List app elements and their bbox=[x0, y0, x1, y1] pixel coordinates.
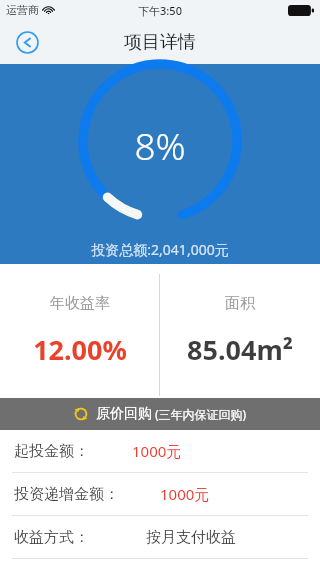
button[interactable]: 面积 bbox=[160, 264, 320, 398]
staticText: 面积 bbox=[225, 294, 255, 313]
staticText: 项目详情 bbox=[124, 31, 196, 54]
staticText: 投资总额:2,041,000元 bbox=[91, 240, 229, 259]
staticText: 1000元 bbox=[160, 484, 210, 504]
staticText: 运营商 bbox=[6, 3, 39, 17]
button[interactable]: 投资递增金额： bbox=[0, 473, 320, 515]
staticText: 85.04m² bbox=[187, 331, 293, 368]
button[interactable]: Back bbox=[10, 25, 44, 59]
staticText: 收益方式： bbox=[14, 528, 89, 547]
staticText: 下午3:50 bbox=[138, 3, 182, 18]
staticText: 12.00% bbox=[33, 331, 127, 368]
staticText: 原价回购 bbox=[96, 405, 152, 423]
staticText: 8% bbox=[134, 120, 186, 170]
button[interactable]: 原价回购 bbox=[0, 398, 320, 430]
staticText: 1000元 bbox=[132, 441, 182, 461]
button[interactable]: 收益方式： bbox=[0, 516, 320, 558]
button[interactable]: 年收益率 bbox=[0, 264, 159, 398]
staticText: 按月支付收益 bbox=[146, 528, 236, 547]
staticText: 投资递增金额： bbox=[14, 485, 119, 504]
staticText: 年收益率 bbox=[50, 294, 110, 313]
button[interactable]: 起投金额： bbox=[0, 430, 320, 472]
staticText: 起投金额： bbox=[14, 442, 89, 461]
staticText: (三年内保证回购) bbox=[155, 406, 247, 422]
